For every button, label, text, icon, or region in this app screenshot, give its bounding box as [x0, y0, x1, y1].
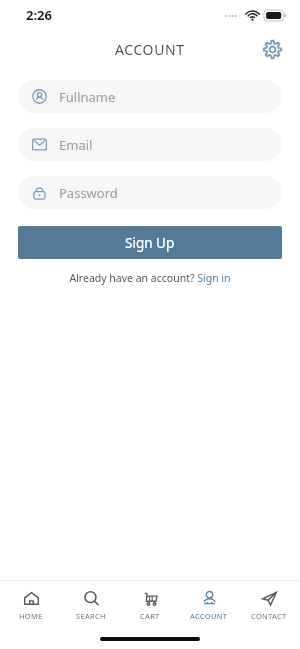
button[interactable]: Sign Up [18, 226, 282, 259]
staticText: CART [140, 611, 160, 621]
button[interactable]: Email [18, 128, 282, 161]
staticText: Sign Up [125, 234, 175, 252]
staticText: Fullname [59, 88, 116, 106]
button[interactable]: ACCOUNT [181, 586, 237, 625]
button[interactable]: CART [122, 586, 178, 625]
staticText: 2:26 [26, 6, 52, 24]
button[interactable]: Settings [254, 31, 290, 67]
staticText: Already have an account? Sign in [69, 271, 231, 285]
staticText: ACCOUNT [115, 40, 185, 59]
staticText: SEARCH [76, 611, 106, 621]
button[interactable]: CONTACT [241, 586, 297, 625]
button[interactable]: Password [18, 176, 282, 209]
staticText: ACCOUNT [190, 611, 228, 621]
staticText: HOME [19, 611, 43, 621]
button[interactable]: Fullname [18, 80, 282, 113]
staticText: CONTACT [251, 611, 287, 621]
button[interactable]: SEARCH [63, 586, 119, 625]
button[interactable]: Already have an account? Sign in [69, 271, 231, 285]
staticText: Email [59, 136, 93, 154]
staticText: Password [59, 184, 118, 202]
button[interactable]: HOME [3, 586, 59, 625]
